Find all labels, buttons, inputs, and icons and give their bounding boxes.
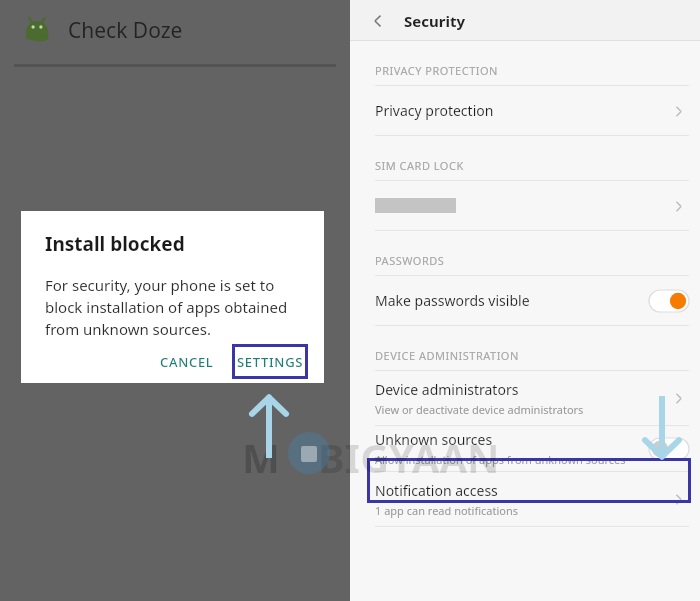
other: Open	[667, 488, 689, 510]
staticText: SETTINGS	[237, 353, 304, 371]
staticText: Make passwords visible	[375, 291, 530, 310]
staticText: Device administrators	[375, 380, 519, 399]
button[interactable]: Device administrators	[350, 371, 700, 425]
staticText: SIM CARD LOCK	[375, 158, 464, 173]
button[interactable]: CANCEL	[148, 345, 226, 379]
staticText: CANCEL	[160, 353, 214, 371]
button[interactable]: Privacy protection	[350, 86, 700, 135]
staticText: Install blocked	[45, 231, 185, 257]
button[interactable]: Notification access	[350, 472, 700, 526]
button[interactable]: SETTINGS	[232, 344, 308, 379]
staticText: Check Doze	[68, 16, 183, 45]
other: Open	[667, 387, 689, 409]
staticText: BIGYAAN	[318, 430, 500, 484]
staticText: 1 app can read notifications	[375, 503, 519, 518]
button[interactable]: Toggle on	[649, 290, 689, 312]
other: Open	[667, 100, 689, 122]
other: Open	[667, 195, 689, 217]
staticText: PASSWORDS	[375, 253, 445, 268]
button[interactable]: Open	[350, 181, 700, 230]
button[interactable]: Back	[366, 9, 390, 33]
staticText: View or deactivate device administrators	[375, 402, 584, 417]
staticText: For security, your phone is set to block…	[45, 275, 308, 340]
button[interactable]: Toggle off	[649, 438, 689, 460]
staticText: Privacy protection	[375, 101, 494, 120]
staticText: Notification access	[375, 481, 498, 500]
staticText: M	[242, 430, 280, 484]
staticText: Allow installation of apps from unknown …	[375, 452, 626, 467]
staticText: PRIVACY PROTECTION	[375, 63, 498, 78]
staticText: DEVICE ADMINISTRATION	[375, 348, 519, 363]
staticText: Security	[404, 11, 465, 31]
button[interactable]: Unknown sources	[350, 426, 700, 471]
staticText: Unknown sources	[375, 430, 493, 449]
button[interactable]: Make passwords visible	[350, 276, 700, 325]
